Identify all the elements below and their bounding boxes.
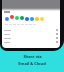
button[interactable] — [2, 40, 60, 44]
button[interactable]: Telegram — [25, 17, 29, 21]
button[interactable]: More — [40, 17, 44, 21]
button[interactable] — [2, 32, 60, 36]
button[interactable]: Gmail — [10, 15, 14, 19]
button[interactable]: Drive — [20, 16, 24, 20]
button[interactable]: Keep — [35, 17, 39, 21]
button[interactable]: WhatsApp — [15, 16, 19, 20]
staticText: Email & Cloud — [18, 61, 46, 66]
button[interactable]: Messages — [5, 17, 9, 21]
button[interactable] — [2, 36, 60, 40]
staticText: Share via — [23, 54, 42, 59]
button[interactable]: Chat — [30, 17, 34, 21]
button[interactable] — [2, 28, 60, 32]
